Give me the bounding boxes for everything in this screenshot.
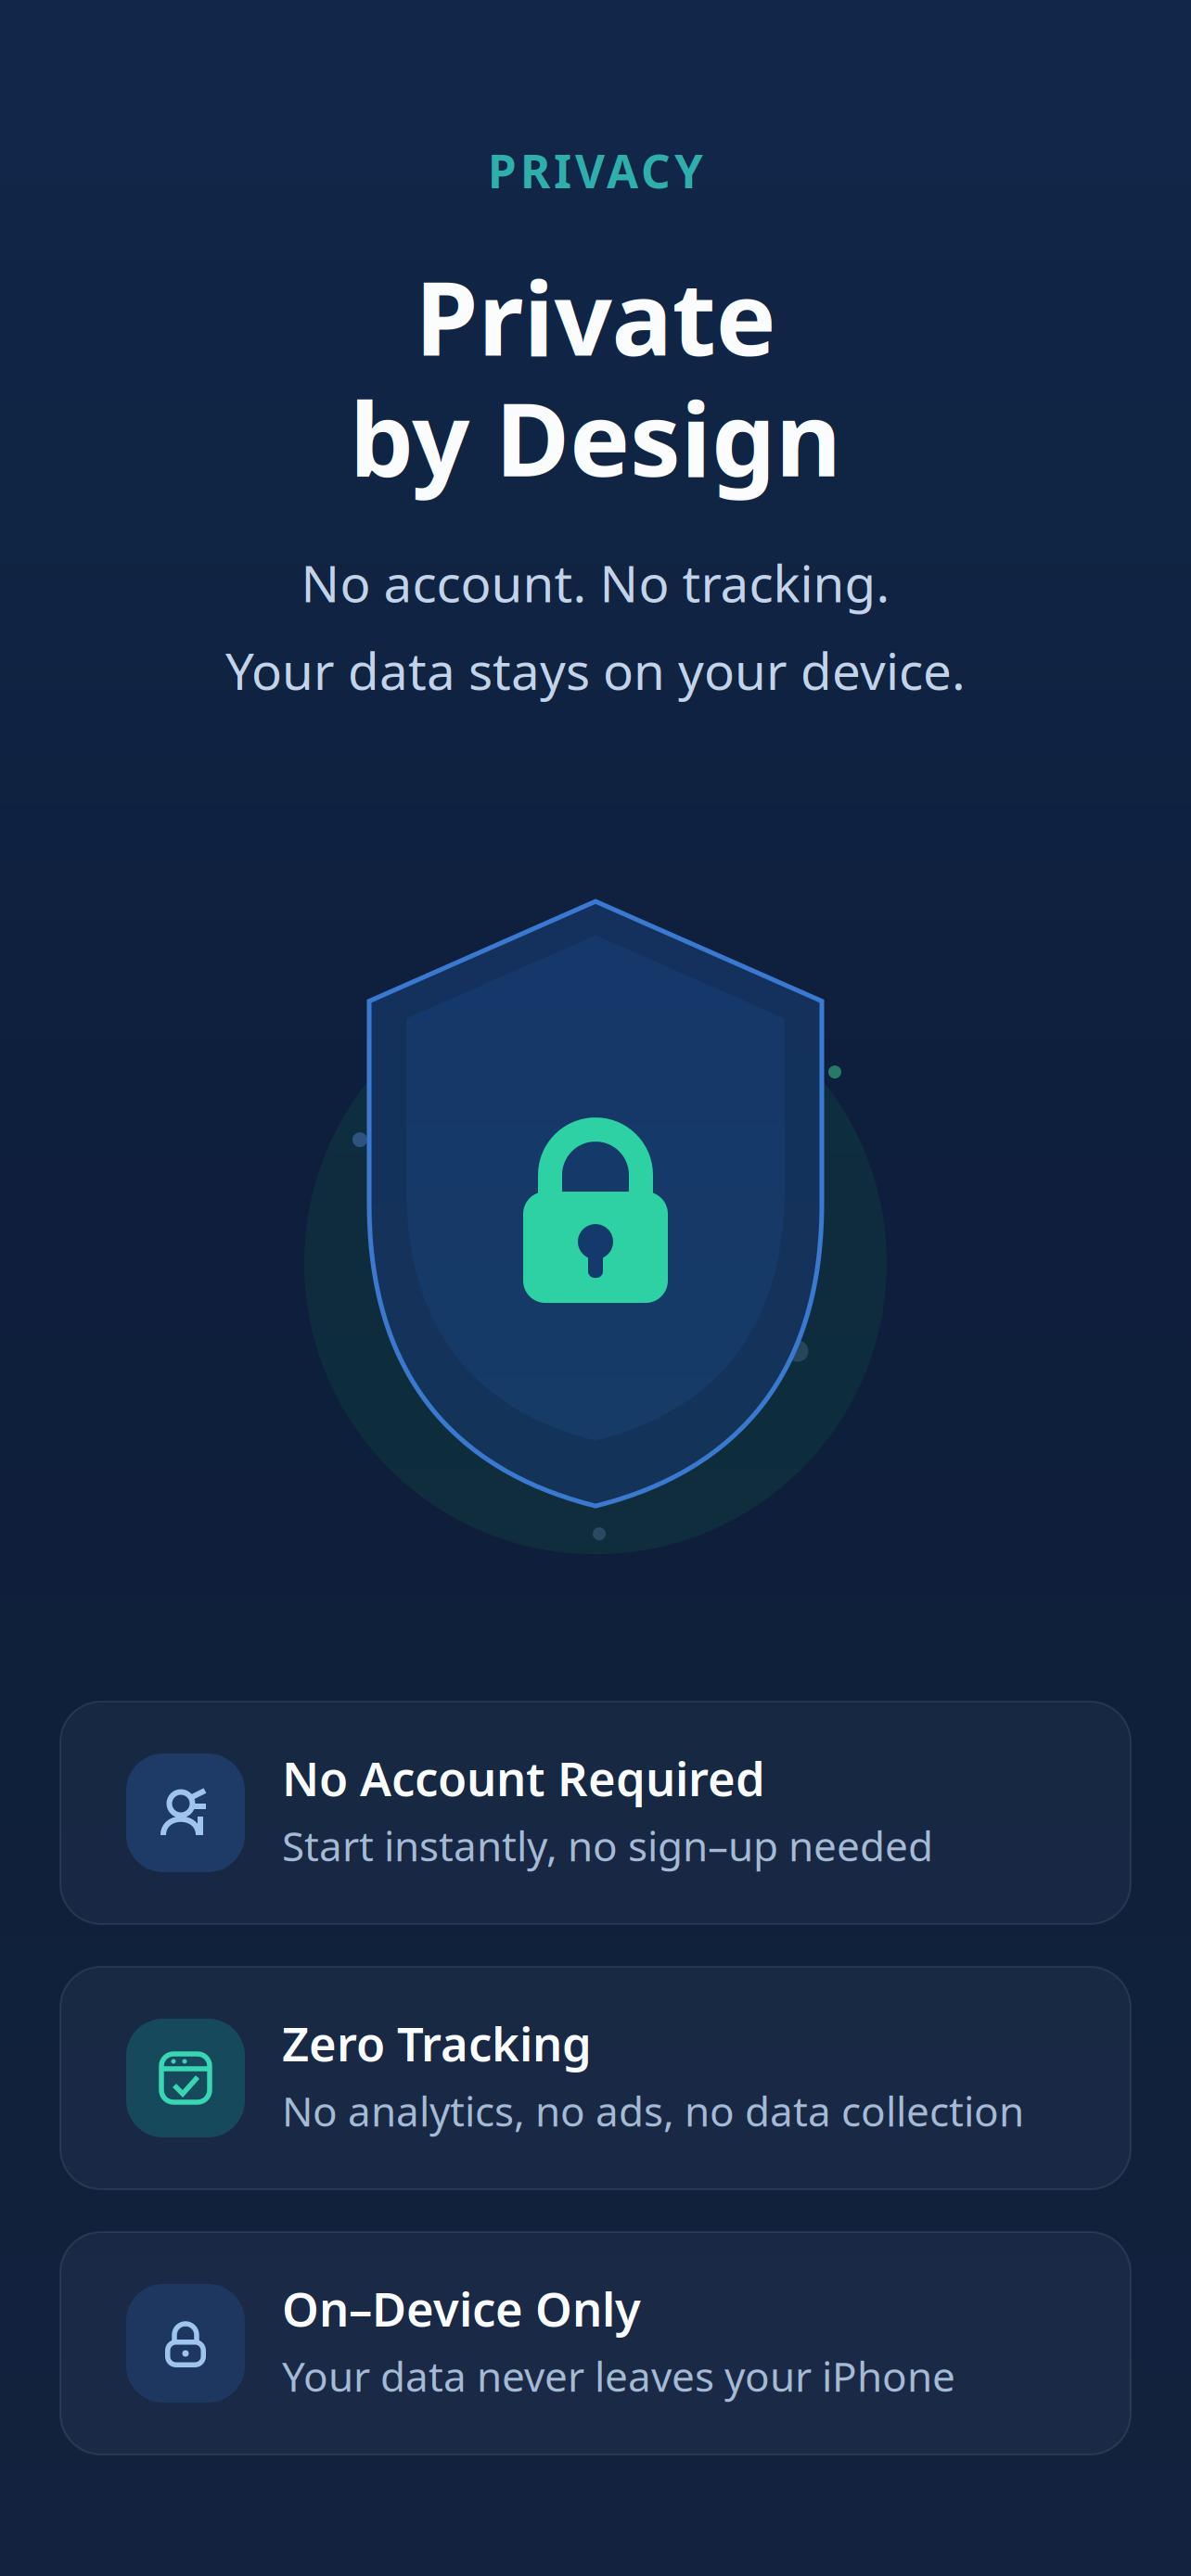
staticText: No account. No tracking. xyxy=(301,549,890,616)
staticText: Your data never leaves your iPhone xyxy=(282,2349,955,2403)
staticText: No Account Required xyxy=(282,1747,765,1809)
button[interactable]: Zero Tracking xyxy=(60,1967,1131,2189)
staticText: No analytics, no ads, no data collection xyxy=(282,2084,1024,2138)
staticText: by Design xyxy=(350,370,841,504)
staticText: Your data stays on your device. xyxy=(225,637,966,704)
button[interactable]: No Account Required xyxy=(60,1702,1131,1924)
staticText: Start instantly, no sign–up needed xyxy=(282,1818,933,1872)
staticText: On–Device Only xyxy=(282,2277,641,2339)
staticText: Private xyxy=(415,249,776,384)
button[interactable]: On–Device Only xyxy=(60,2232,1131,2455)
staticText: Zero Tracking xyxy=(282,2012,592,2074)
staticText: PRIVACY xyxy=(488,140,703,201)
